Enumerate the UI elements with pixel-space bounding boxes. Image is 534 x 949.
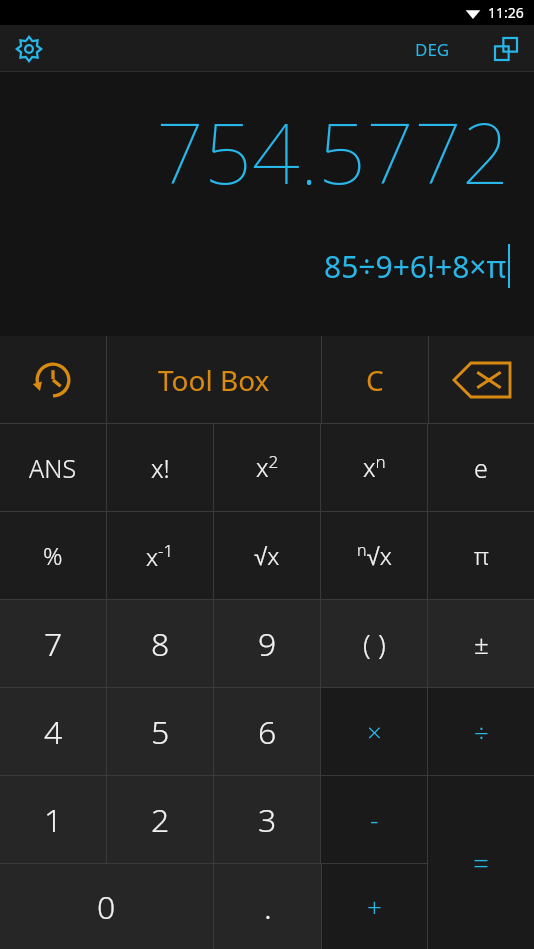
staticText: 5: [151, 710, 170, 754]
button[interactable]: 7: [0, 600, 106, 687]
staticText: DEG: [415, 38, 450, 61]
button[interactable]: 9: [214, 600, 320, 687]
staticText: ×: [367, 714, 382, 749]
staticText: 8: [151, 622, 170, 666]
button[interactable]: xn: [321, 424, 427, 511]
button[interactable]: %: [0, 512, 106, 599]
staticText: x-1: [146, 539, 174, 573]
button[interactable]: Copy: [490, 33, 522, 65]
staticText: ANS: [29, 451, 77, 485]
staticText: n√x: [357, 539, 392, 572]
button[interactable]: x-1: [107, 512, 213, 599]
staticText: 754.5772: [156, 94, 510, 208]
button[interactable]: C: [322, 336, 428, 423]
staticText: %: [43, 539, 63, 572]
button[interactable]: x!: [107, 424, 213, 511]
staticText: +: [367, 889, 382, 924]
staticText: =: [473, 844, 489, 882]
staticText: e: [474, 451, 488, 485]
staticText: -: [370, 802, 379, 837]
staticText: 3: [258, 798, 277, 842]
staticText: 1: [44, 798, 63, 842]
button[interactable]: History: [0, 336, 106, 423]
button[interactable]: e: [428, 424, 534, 511]
staticText: √x: [254, 539, 280, 572]
button[interactable]: 4: [0, 688, 106, 775]
staticText: x!: [151, 451, 170, 485]
button[interactable]: π: [428, 512, 534, 599]
button[interactable]: x2: [214, 424, 320, 511]
button[interactable]: DEG: [409, 34, 456, 65]
button[interactable]: Tool Box: [107, 336, 321, 423]
staticText: ÷: [474, 714, 489, 749]
button[interactable]: 2: [107, 776, 213, 863]
staticText: xn: [363, 450, 386, 485]
staticText: ( ): [363, 625, 386, 663]
staticText: 0: [97, 885, 116, 929]
button[interactable]: ANS: [0, 424, 106, 511]
staticText: 6: [258, 710, 277, 754]
staticText: x2: [256, 450, 279, 485]
button[interactable]: +: [322, 864, 427, 949]
button[interactable]: 6: [214, 688, 320, 775]
button[interactable]: 1: [0, 776, 106, 863]
button[interactable]: Settings: [12, 32, 46, 66]
button[interactable]: 8: [107, 600, 213, 687]
button[interactable]: ±: [428, 600, 534, 687]
button[interactable]: n√x: [321, 512, 427, 599]
staticText: 2: [151, 798, 170, 842]
staticText: 85÷9+6!+8×π: [324, 246, 507, 287]
button[interactable]: Backspace: [429, 336, 534, 423]
button[interactable]: .: [214, 864, 321, 949]
button[interactable]: ÷: [428, 688, 534, 775]
staticText: 11:26: [488, 3, 524, 22]
staticText: .: [264, 885, 272, 929]
button[interactable]: =: [428, 776, 534, 949]
staticText: 4: [44, 710, 63, 754]
staticText: π: [474, 539, 489, 572]
staticText: C: [366, 361, 384, 399]
button[interactable]: 0: [0, 864, 213, 949]
button[interactable]: ×: [321, 688, 427, 775]
staticText: 7: [44, 622, 63, 666]
staticText: ±: [474, 626, 489, 661]
button[interactable]: ( ): [321, 600, 427, 687]
button[interactable]: √x: [214, 512, 320, 599]
staticText: 9: [258, 622, 277, 666]
button[interactable]: 3: [214, 776, 320, 863]
button[interactable]: -: [321, 776, 427, 863]
button[interactable]: 5: [107, 688, 213, 775]
staticText: Tool Box: [158, 361, 270, 399]
